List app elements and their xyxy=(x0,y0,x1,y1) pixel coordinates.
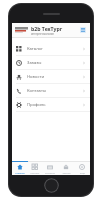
staticText: Новости xyxy=(27,74,82,80)
staticText: интернет-магазин xyxy=(31,32,54,36)
staticText: Заказы xyxy=(62,171,71,174)
staticText: Заказы xyxy=(27,60,82,66)
button[interactable]: Контакты xyxy=(12,84,90,97)
staticText: Профиль xyxy=(27,102,82,108)
button[interactable]: Каталог xyxy=(27,162,42,175)
staticText: Каталог xyxy=(27,46,82,52)
staticText: b2b ТехТург xyxy=(31,25,63,32)
staticText: Каталог xyxy=(30,171,40,174)
button[interactable]: Новости xyxy=(12,70,90,83)
button[interactable]: Menu xyxy=(79,26,87,34)
button[interactable]: Ещё xyxy=(74,162,90,175)
button[interactable]: Корзина xyxy=(42,162,58,175)
button[interactable]: Профиль xyxy=(12,98,90,111)
staticText: Корзина xyxy=(45,171,55,174)
staticText: Ещё xyxy=(80,171,85,174)
button[interactable]: Logo xyxy=(15,27,28,33)
staticText: Главная xyxy=(15,171,25,174)
button[interactable]: Каталог xyxy=(12,42,90,55)
staticText: Контакты xyxy=(27,88,82,94)
button[interactable]: Заказы xyxy=(12,56,90,69)
button[interactable]: Заказы xyxy=(58,162,74,175)
button[interactable]: Главная xyxy=(12,162,27,175)
